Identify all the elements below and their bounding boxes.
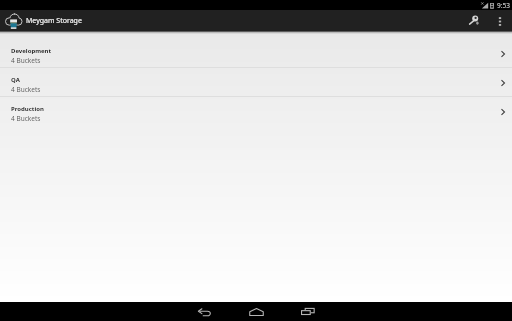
button[interactable]: Back [179, 302, 230, 321]
button[interactable]: Add key [459, 10, 489, 31]
button[interactable]: Recent apps [282, 302, 333, 321]
staticText: QA [11, 76, 20, 84]
button[interactable]: More options [489, 10, 512, 31]
button[interactable]: Development [0, 39, 512, 67]
staticText: 4 Buckets [11, 114, 41, 123]
staticText: 9:53 [497, 1, 510, 10]
staticText: Production [11, 105, 44, 113]
button[interactable]: Production [0, 97, 512, 125]
button[interactable]: Home [230, 302, 282, 321]
staticText: 4 Buckets [11, 85, 41, 94]
staticText: 4 Buckets [11, 56, 41, 65]
button[interactable]: QA [0, 68, 512, 96]
staticText: Development [11, 47, 52, 55]
staticText: Meygam Storage [26, 16, 82, 26]
